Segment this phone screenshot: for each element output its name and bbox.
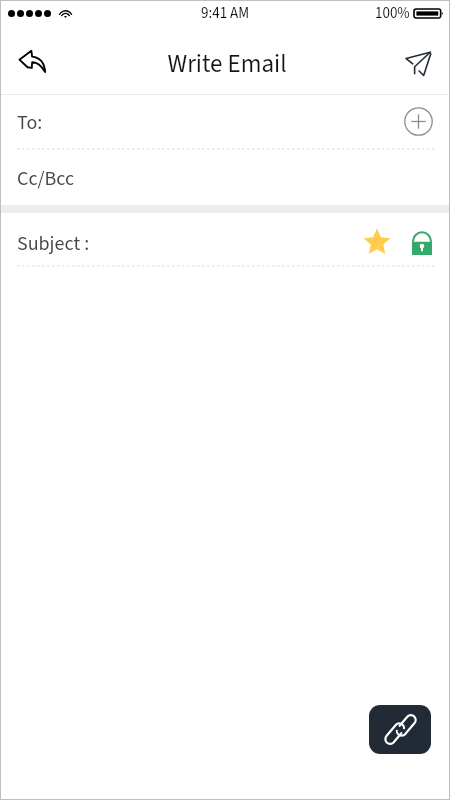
staticText: Write Email bbox=[167, 46, 287, 82]
button[interactable]: Add recipient bbox=[401, 104, 435, 138]
staticText: Subject : bbox=[17, 230, 90, 258]
staticText: Cc/Bcc bbox=[17, 165, 75, 193]
button[interactable] bbox=[0, 267, 450, 800]
button[interactable]: Encrypt message bbox=[406, 226, 438, 258]
staticText: To: bbox=[17, 109, 43, 137]
button[interactable]: Send bbox=[395, 38, 443, 86]
staticText: 100% bbox=[375, 3, 410, 24]
button[interactable]: To: bbox=[0, 95, 450, 149]
button[interactable]: Cc/Bcc bbox=[0, 150, 450, 205]
button[interactable]: Back bbox=[9, 38, 57, 86]
button[interactable]: Attach link bbox=[369, 705, 431, 754]
button[interactable]: Mark as important bbox=[361, 226, 393, 258]
staticText: 9:41 AM bbox=[201, 3, 250, 24]
button[interactable]: Subject : bbox=[0, 213, 450, 266]
